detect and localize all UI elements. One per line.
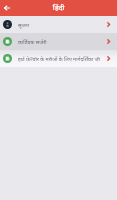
button[interactable]: हार्ट फेल्योर के मरीजों के लिए मार्गदर्श… [0,50,117,67]
staticText: हिंदी [53,3,65,13]
button[interactable]: सूचना [0,16,117,33]
button[interactable]: Back [1,2,13,14]
staticText: कार्डियक सर्जरी [18,38,105,45]
staticText: सूचना [18,21,105,28]
staticText: हार्ट फेल्योर के मरीजों के लिए मार्गदर्श… [18,55,105,62]
button[interactable]: कार्डियक सर्जरी [0,33,117,50]
